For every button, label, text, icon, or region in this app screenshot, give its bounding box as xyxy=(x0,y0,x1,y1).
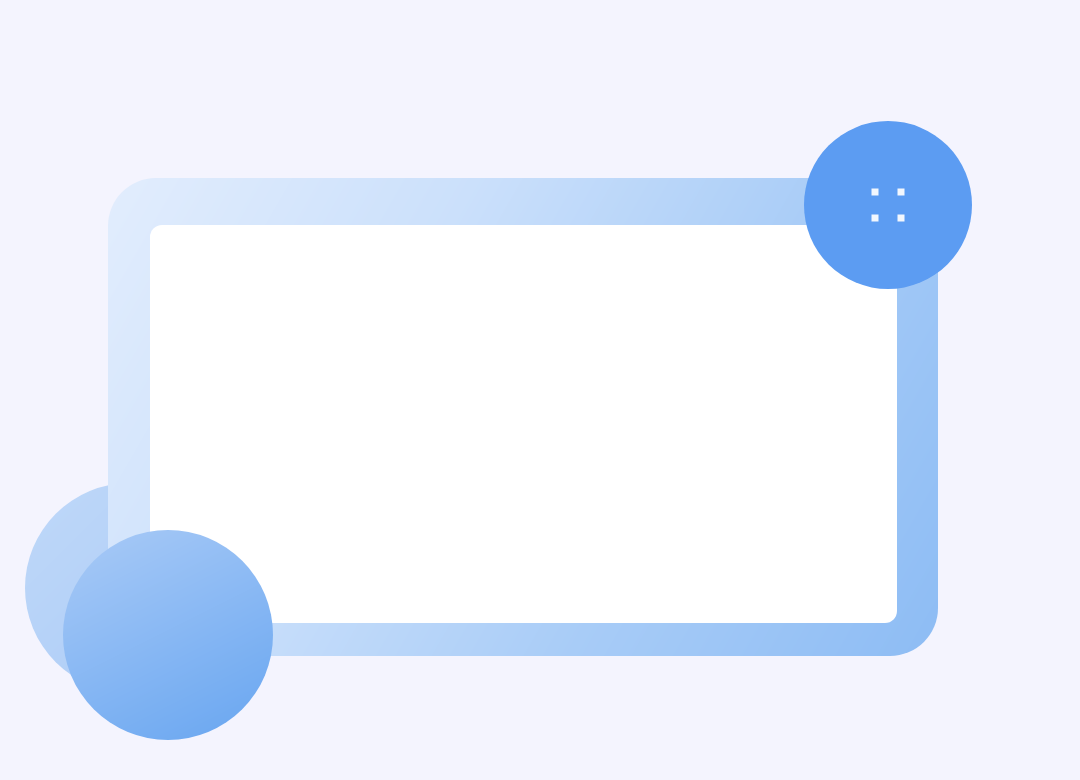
button[interactable]: Apps xyxy=(0,0,1080,780)
